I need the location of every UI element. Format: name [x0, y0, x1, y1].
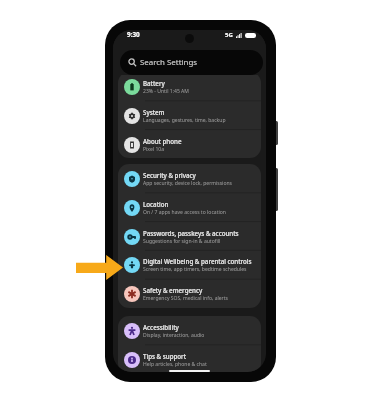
staticText: 23% - Until 1:45 AM	[143, 88, 189, 95]
staticText: About phone	[143, 137, 182, 145]
staticText: Display, interaction, audio	[143, 332, 205, 339]
staticText: App security, device lock, permissions	[143, 180, 233, 187]
button[interactable]: System	[118, 101, 261, 130]
staticText: System	[143, 108, 165, 116]
staticText: Location	[143, 200, 169, 208]
staticText: Pixel 10a	[143, 146, 164, 153]
staticText: 9:30	[127, 30, 140, 39]
button[interactable]: Tips & support	[118, 345, 261, 372]
staticText: Help articles, phone & chat	[143, 361, 207, 368]
staticText: Tips & support	[143, 352, 187, 360]
button[interactable]: Search Settings	[120, 50, 263, 75]
staticText: Digital Wellbeing & parental controls	[143, 257, 252, 265]
staticText: Emergency SOS, medical info, alerts	[143, 295, 228, 302]
button[interactable]: Battery	[118, 72, 261, 101]
button[interactable]: Safety & emergency	[118, 279, 261, 308]
staticText: Screen time, app timers, bedtime schedul…	[143, 266, 247, 273]
staticText: Languages, gestures, time, backup	[143, 117, 226, 124]
staticText: Search Settings	[140, 57, 198, 68]
staticText: On / 7 apps have access to location	[143, 209, 226, 216]
button[interactable]: Passwords, passkeys & accounts	[118, 222, 261, 251]
button[interactable]: Digital Wellbeing & parental controls	[118, 250, 261, 279]
staticText: 5G	[225, 31, 233, 39]
staticText: Passwords, passkeys & accounts	[143, 229, 239, 237]
button[interactable]: Location	[118, 193, 261, 222]
button[interactable]: Accessibility	[118, 316, 261, 345]
staticText: Security & privacy	[143, 171, 196, 179]
staticText: Safety & emergency	[143, 286, 203, 294]
staticText: Accessibility	[143, 323, 179, 331]
staticText: Battery	[143, 79, 165, 87]
staticText: Suggestions for sign-in & autofill	[143, 238, 221, 245]
button[interactable]: About phone	[118, 130, 261, 158]
button[interactable]: Security & privacy	[118, 164, 261, 193]
